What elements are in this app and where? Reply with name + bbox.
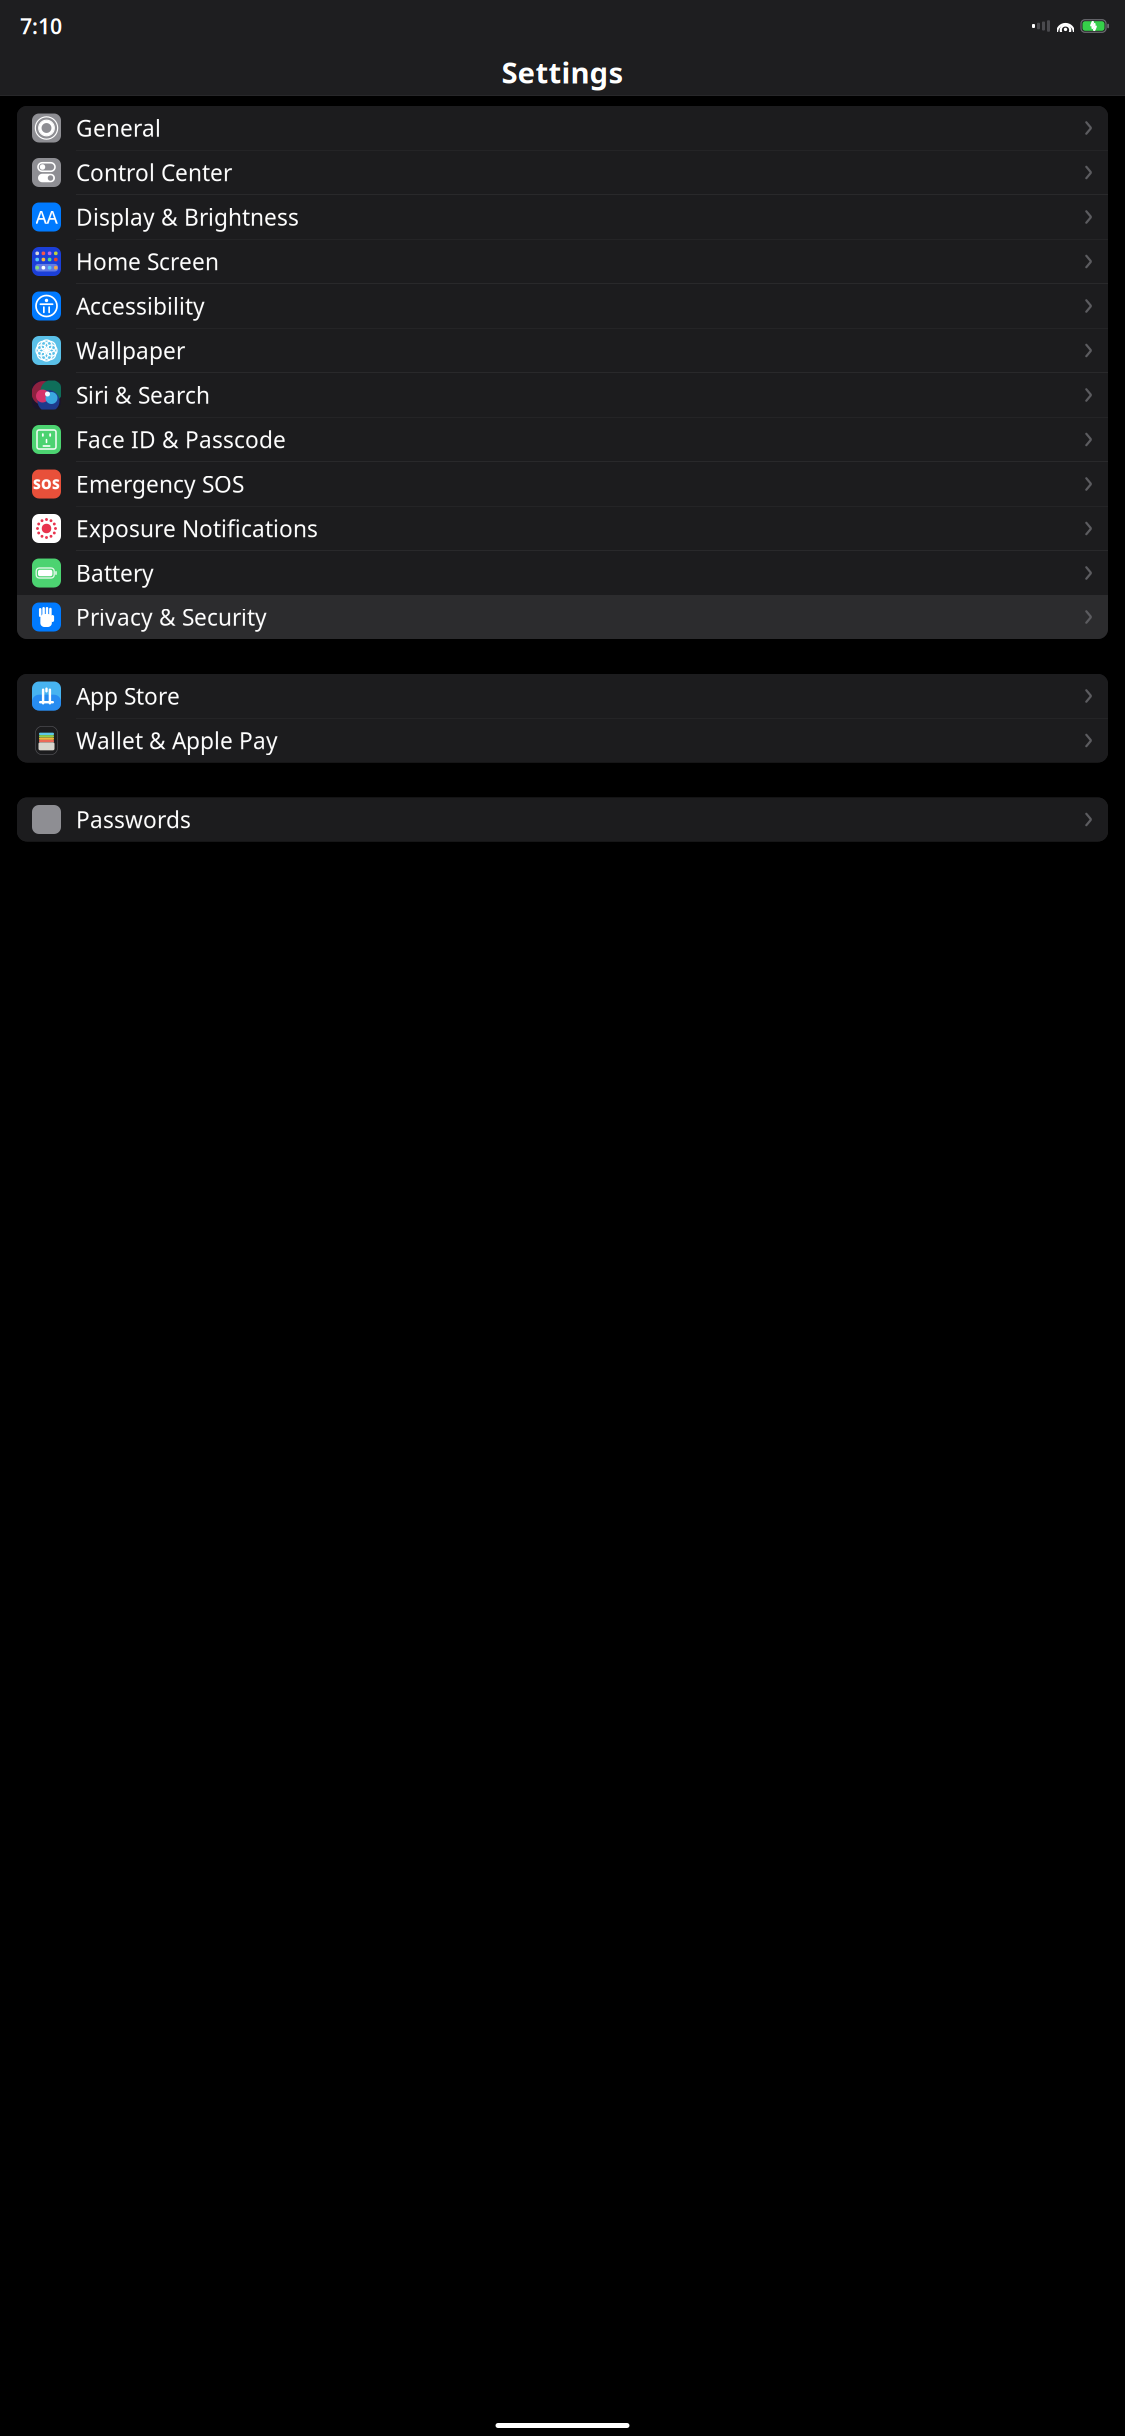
staticText: Siri & Search bbox=[76, 380, 210, 410]
button[interactable]: General bbox=[17, 106, 1108, 150]
staticText: Settings bbox=[501, 52, 623, 91]
staticText: General bbox=[76, 113, 161, 143]
button[interactable]: Exposure Notifications bbox=[17, 506, 1108, 551]
staticText: 7:10 bbox=[20, 12, 62, 40]
staticText: Exposure Notifications bbox=[76, 513, 318, 543]
staticText: Wallet & Apple Pay bbox=[76, 725, 278, 755]
staticText: Passwords bbox=[76, 804, 191, 834]
button[interactable]: Accessibility bbox=[17, 284, 1108, 328]
staticText: AA bbox=[35, 205, 57, 228]
button[interactable]: Siri & Search bbox=[17, 373, 1108, 417]
staticText: Emergency SOS bbox=[76, 469, 244, 499]
staticText: Display & Brightness bbox=[76, 202, 299, 232]
staticText: Control Center bbox=[76, 157, 232, 187]
button[interactable]: Control Center bbox=[17, 150, 1108, 195]
button[interactable]: Wallpaper bbox=[17, 328, 1108, 373]
button[interactable]: Face ID & Passcode bbox=[17, 417, 1108, 462]
button[interactable] bbox=[17, 797, 1108, 841]
staticText: Battery bbox=[76, 558, 154, 588]
button[interactable]: Battery bbox=[17, 551, 1108, 595]
button[interactable] bbox=[17, 718, 1108, 762]
button[interactable]: Privacy & Security bbox=[17, 595, 1108, 639]
staticText: Privacy & Security bbox=[76, 602, 267, 632]
button[interactable]: App Store bbox=[17, 674, 1108, 718]
staticText: App Store bbox=[76, 681, 180, 711]
button[interactable]: Home Screen bbox=[17, 239, 1108, 284]
staticText: Face ID & Passcode bbox=[76, 424, 286, 454]
staticText: Home Screen bbox=[76, 246, 219, 276]
button[interactable]: AA bbox=[17, 195, 1108, 239]
staticText: Accessibility bbox=[76, 291, 205, 321]
staticText: SOS bbox=[33, 475, 60, 493]
staticText: Wallpaper bbox=[76, 335, 185, 365]
button[interactable]: Settings bbox=[0, 48, 1125, 96]
button[interactable]: SOS bbox=[17, 462, 1108, 506]
